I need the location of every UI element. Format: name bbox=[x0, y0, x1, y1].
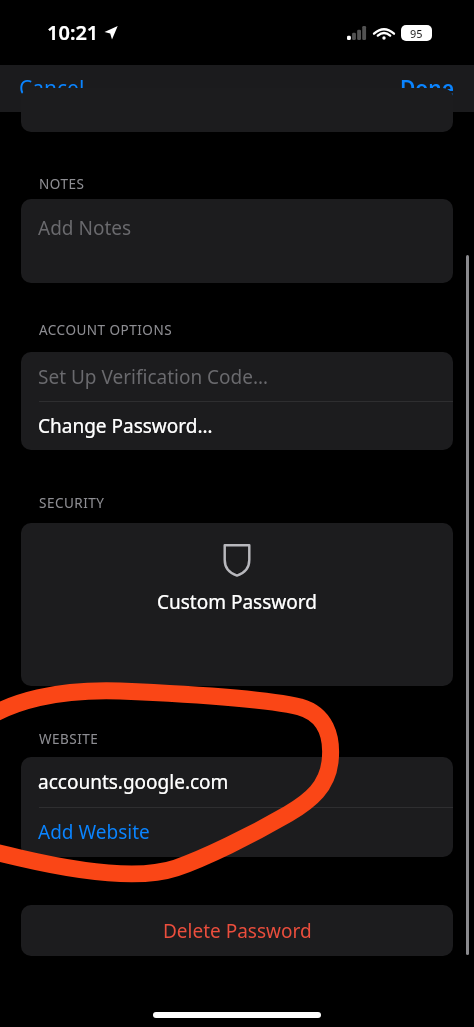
staticText: 10:21 bbox=[47, 19, 99, 46]
staticText: Change Password… bbox=[38, 413, 213, 439]
button[interactable]: Change Password… bbox=[21, 401, 453, 450]
staticText: Add Notes bbox=[38, 215, 132, 241]
staticText: 95 bbox=[410, 26, 423, 41]
button[interactable] bbox=[21, 88, 453, 132]
staticText: Cancel bbox=[19, 74, 85, 103]
staticText: accounts.google.com bbox=[38, 769, 229, 795]
staticText: ACCOUNT OPTIONS bbox=[39, 321, 173, 339]
button[interactable]: Set Up Verification Code… bbox=[21, 352, 453, 401]
staticText: Add Website bbox=[38, 819, 150, 845]
staticText: Delete Password bbox=[163, 918, 312, 944]
button[interactable]: Cancel bbox=[8, 68, 96, 109]
other: Security shield bbox=[222, 541, 252, 577]
button[interactable]: Done bbox=[389, 68, 466, 109]
staticText: Done bbox=[400, 74, 455, 103]
staticText: WEBSITE bbox=[39, 730, 99, 748]
button[interactable]: Add Website bbox=[21, 807, 453, 857]
button[interactable]: Security shield bbox=[21, 523, 453, 686]
staticText: Custom Password bbox=[157, 589, 317, 615]
staticText: Set Up Verification Code… bbox=[38, 364, 269, 390]
staticText: NOTES bbox=[39, 175, 85, 193]
button[interactable]: Add Notes bbox=[21, 199, 453, 283]
staticText: SECURITY bbox=[39, 494, 105, 512]
button[interactable]: accounts.google.com bbox=[21, 757, 453, 807]
button[interactable]: Delete Password bbox=[21, 905, 453, 956]
